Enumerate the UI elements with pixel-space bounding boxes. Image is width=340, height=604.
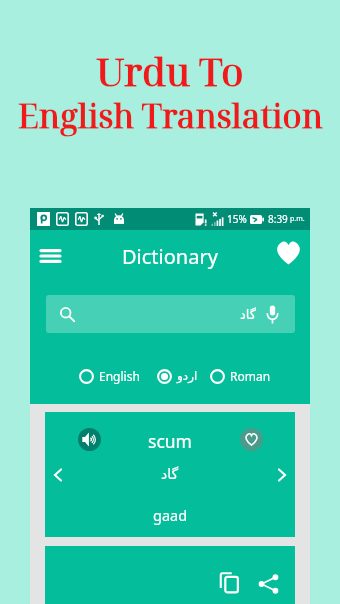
- staticText: 15%: [227, 212, 247, 226]
- button[interactable]: Copy: [214, 567, 244, 597]
- staticText: English Translation: [18, 93, 323, 138]
- staticText: gaad: [153, 505, 188, 525]
- button[interactable]: English: [79, 360, 140, 392]
- staticText: گاد: [161, 466, 179, 482]
- button[interactable]: Play pronunciation: [45, 412, 295, 537]
- button[interactable]: Favorites: [272, 237, 304, 269]
- button[interactable]: Copy: [45, 546, 295, 604]
- button[interactable]: گاد: [46, 295, 295, 333]
- staticText: 8:39: [268, 212, 288, 226]
- button[interactable]: Open navigation menu: [33, 239, 67, 273]
- staticText: گاد: [240, 307, 256, 322]
- staticText: p.m.: [290, 214, 305, 224]
- staticText: Roman: [230, 368, 271, 384]
- staticText: اردو: [177, 369, 198, 383]
- button[interactable]: Next word: [271, 464, 293, 486]
- staticText: Dictionary: [122, 243, 218, 270]
- button[interactable]: Share: [253, 569, 283, 599]
- button[interactable]: Add to favourites: [240, 428, 263, 451]
- button[interactable]: Play pronunciation: [78, 428, 101, 451]
- button[interactable]: اردو: [157, 360, 198, 392]
- button[interactable]: Previous word: [47, 464, 69, 486]
- button[interactable]: Roman: [210, 360, 271, 392]
- staticText: scum: [148, 429, 192, 453]
- staticText: English: [99, 368, 140, 384]
- staticText: Urdu To: [96, 45, 244, 97]
